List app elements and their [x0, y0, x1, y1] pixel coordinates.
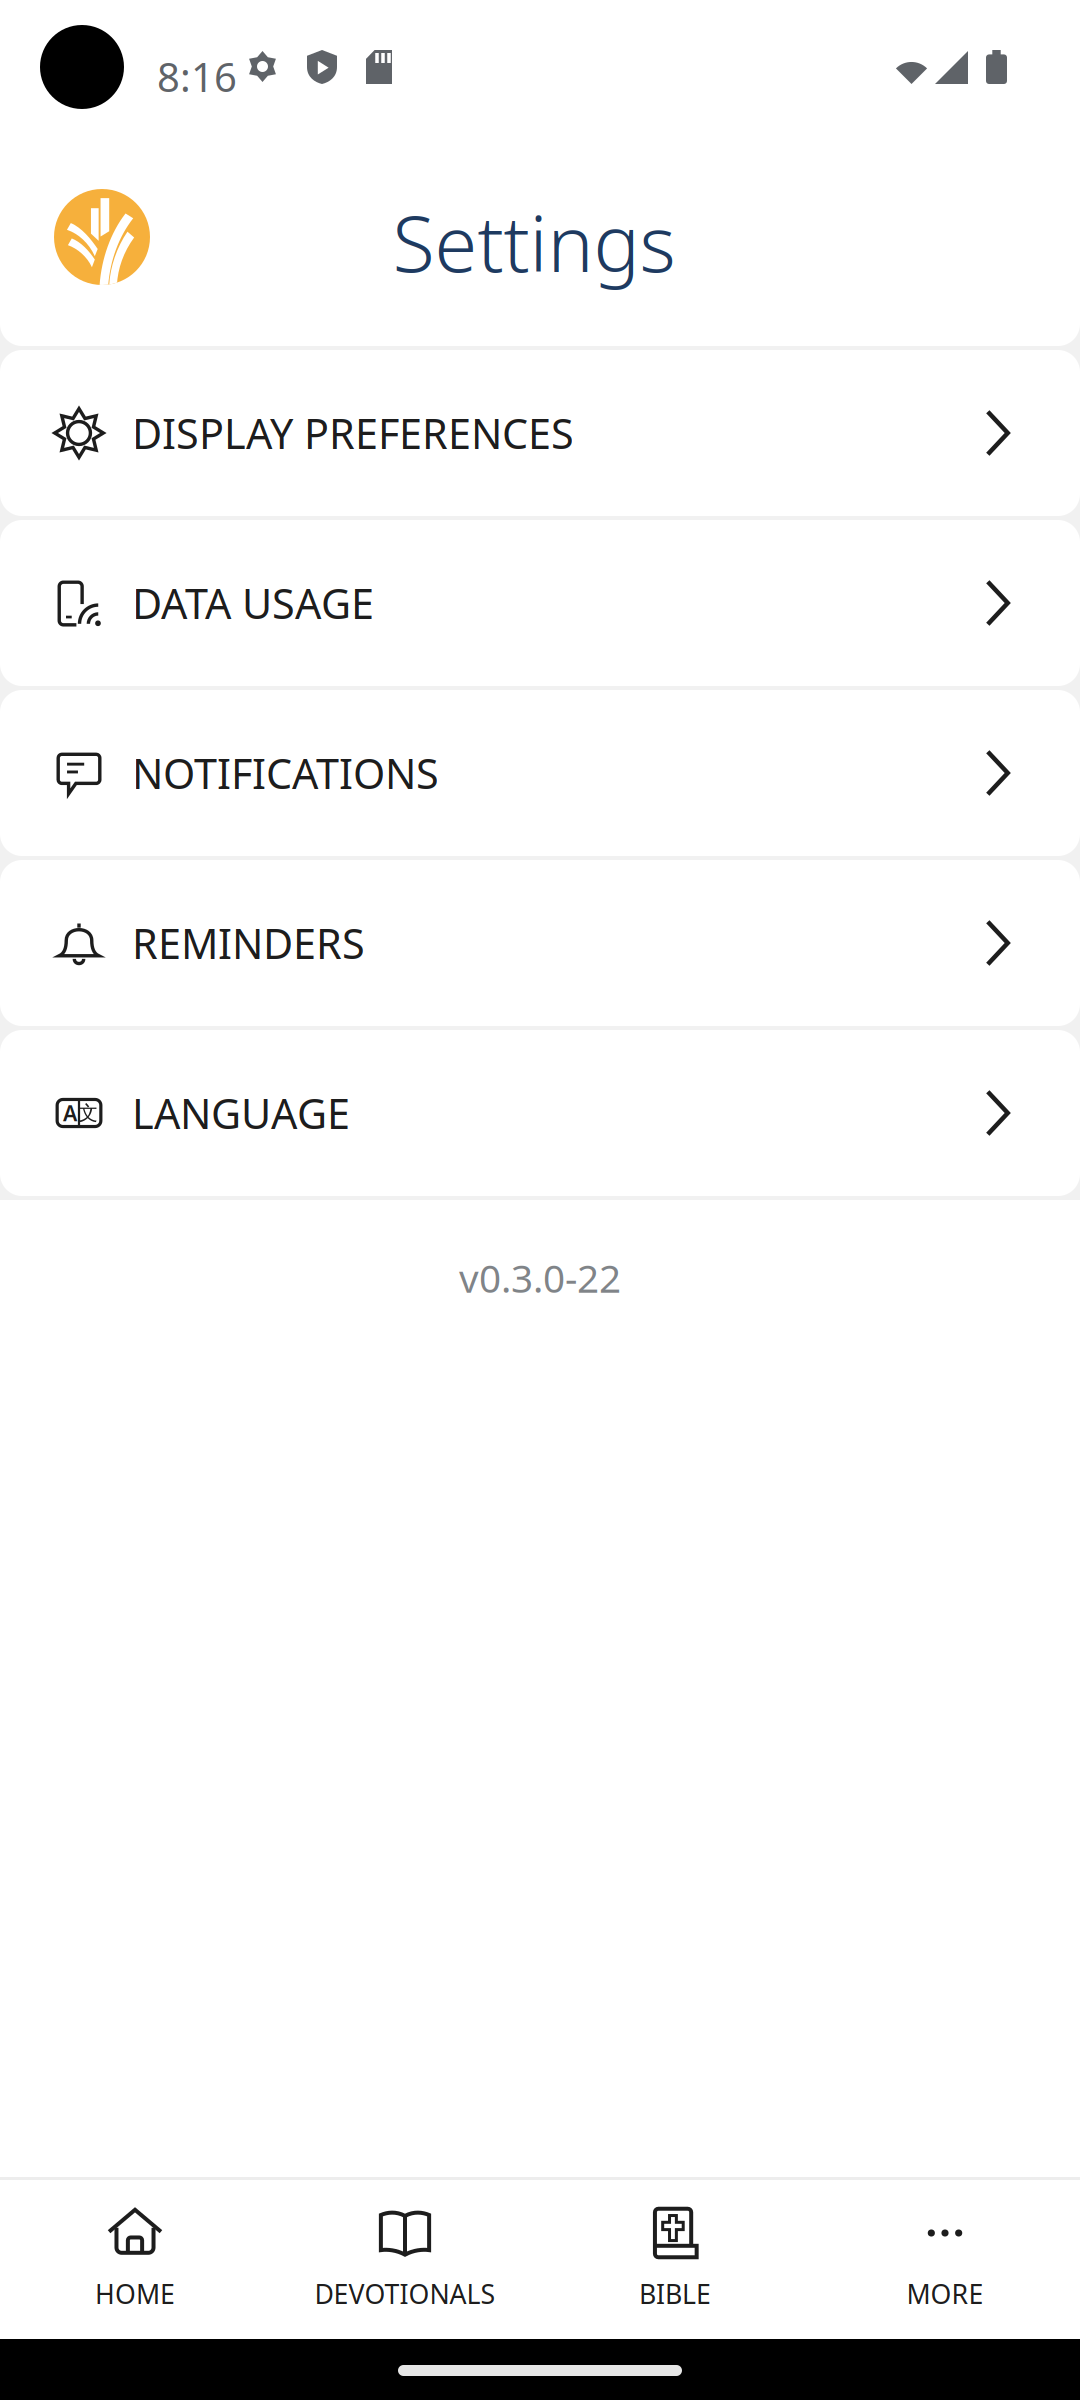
staticText: DEVOTIONALS [314, 2276, 495, 2311]
staticText: DATA USAGE [132, 576, 374, 630]
button[interactable]: NOTIFICATIONS [0, 690, 1080, 856]
staticText: 8:16 [157, 50, 237, 103]
staticText: MORE [906, 2276, 983, 2311]
button[interactable]: MORE [810, 2180, 1080, 2339]
staticText: LANGUAGE [132, 1086, 350, 1140]
button[interactable]: DATA USAGE [0, 520, 1080, 686]
staticText: A [63, 1099, 77, 1127]
staticText: DISPLAY PREFERENCES [132, 406, 574, 460]
button[interactable]: REMINDERS [0, 860, 1080, 1026]
staticText: 文 [78, 1101, 98, 1125]
button[interactable]: HOME [0, 2180, 270, 2339]
staticText: BIBLE [639, 2276, 711, 2311]
staticText: NOTIFICATIONS [132, 746, 439, 800]
button[interactable]: DISPLAY PREFERENCES [0, 350, 1080, 516]
staticText: Settings [392, 191, 675, 293]
staticText: HOME [95, 2276, 175, 2311]
button[interactable]: BIBLE [540, 2180, 810, 2339]
staticText: REMINDERS [132, 916, 365, 970]
button[interactable]: DEVOTIONALS [270, 2180, 540, 2339]
button[interactable]: A [0, 1030, 1080, 1196]
staticText: v0.3.0-22 [459, 1252, 621, 1303]
